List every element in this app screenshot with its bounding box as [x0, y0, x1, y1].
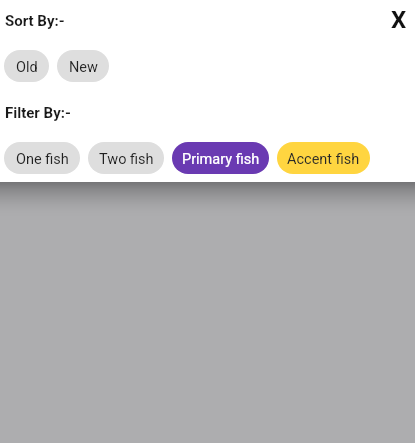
staticText: Old: [16, 59, 38, 76]
staticText: Sort By:-: [5, 12, 65, 30]
staticText: X: [391, 6, 407, 34]
staticText: Filter By:-: [5, 104, 71, 122]
staticText: One fish: [16, 151, 69, 168]
button[interactable]: One fish: [4, 142, 80, 174]
button[interactable]: Two fish: [88, 142, 164, 174]
button[interactable]: Close: [384, 5, 414, 35]
button[interactable]: Accent fish: [277, 142, 370, 174]
staticText: Accent fish: [287, 151, 360, 168]
staticText: Primary fish: [182, 151, 260, 168]
button[interactable]: Old: [4, 50, 49, 82]
staticText: New: [69, 59, 98, 76]
staticText: Two fish: [99, 151, 154, 168]
button[interactable]: Primary fish: [172, 142, 269, 174]
button[interactable]: New: [57, 50, 109, 82]
